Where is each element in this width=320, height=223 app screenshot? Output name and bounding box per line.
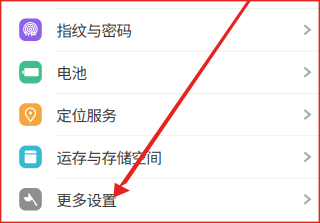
staticText: 更多设置	[56, 188, 116, 210]
staticText: 运存与存储空间	[56, 146, 161, 168]
button[interactable]: 定位服务	[0, 94, 320, 136]
staticText: 电池	[56, 61, 86, 83]
button[interactable]: 指纹与密码	[0, 9, 320, 51]
staticText: 定位服务	[56, 103, 116, 126]
button[interactable]: 运存与存储空间	[0, 136, 320, 179]
button[interactable]: 更多设置	[0, 179, 320, 220]
staticText: 指纹与密码	[56, 19, 131, 41]
button[interactable]: 电池	[0, 51, 320, 94]
